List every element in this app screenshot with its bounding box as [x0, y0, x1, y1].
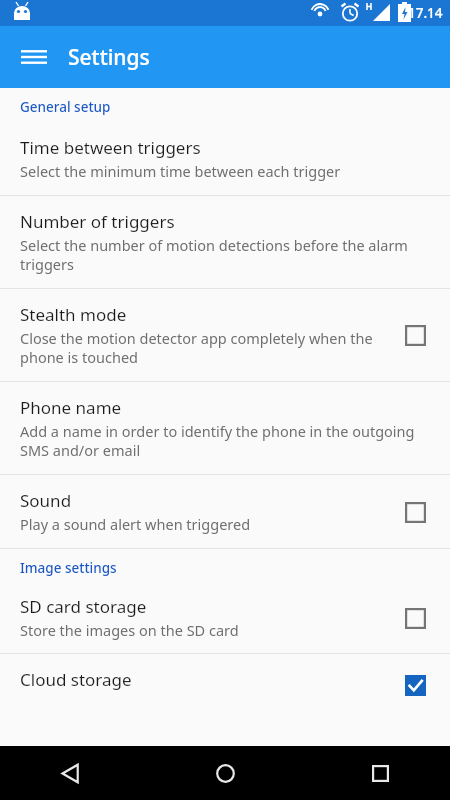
staticText: Store the images on the SD card — [20, 620, 239, 640]
button[interactable]: Sound — [398, 495, 432, 529]
staticText: Select the number of motion detections b… — [20, 235, 420, 274]
staticText: Phone name — [20, 396, 122, 419]
button[interactable]: SD card storage — [0, 587, 450, 653]
button[interactable]: Number of triggers — [0, 196, 450, 288]
button[interactable]: Sound — [0, 475, 450, 548]
staticText: Time between triggers — [20, 136, 201, 159]
button[interactable]: Recent apps — [356, 749, 404, 797]
button[interactable]: Stealth mode — [0, 289, 450, 381]
staticText: Select the minimum time between each tri… — [20, 161, 341, 181]
button[interactable]: Phone name — [0, 382, 450, 474]
button[interactable]: Open navigation menu — [9, 32, 59, 82]
button[interactable]: Home — [201, 749, 249, 797]
staticText: Stealth mode — [20, 303, 127, 326]
button[interactable]: SD card storage — [398, 601, 432, 635]
button[interactable]: Cloud storage — [398, 668, 432, 702]
button[interactable]: Cloud storage — [0, 654, 450, 702]
staticText: Play a sound alert when triggered — [20, 514, 251, 534]
staticText: Close the motion detector app completely… — [20, 328, 386, 367]
staticText: Cloud storage — [20, 668, 132, 691]
button[interactable]: Stealth mode — [398, 318, 432, 352]
staticText: Settings — [68, 43, 150, 72]
button[interactable]: Time between triggers — [0, 126, 450, 195]
staticText: Number of triggers — [20, 210, 175, 233]
button[interactable]: Back — [46, 749, 94, 797]
staticText: 17.14 — [408, 4, 443, 22]
staticText: General setup — [20, 98, 111, 116]
staticText: Sound — [20, 489, 72, 512]
staticText: SD card storage — [20, 595, 147, 618]
staticText: Add a name in order to identify the phon… — [20, 421, 420, 460]
staticText: Image settings — [20, 559, 117, 577]
